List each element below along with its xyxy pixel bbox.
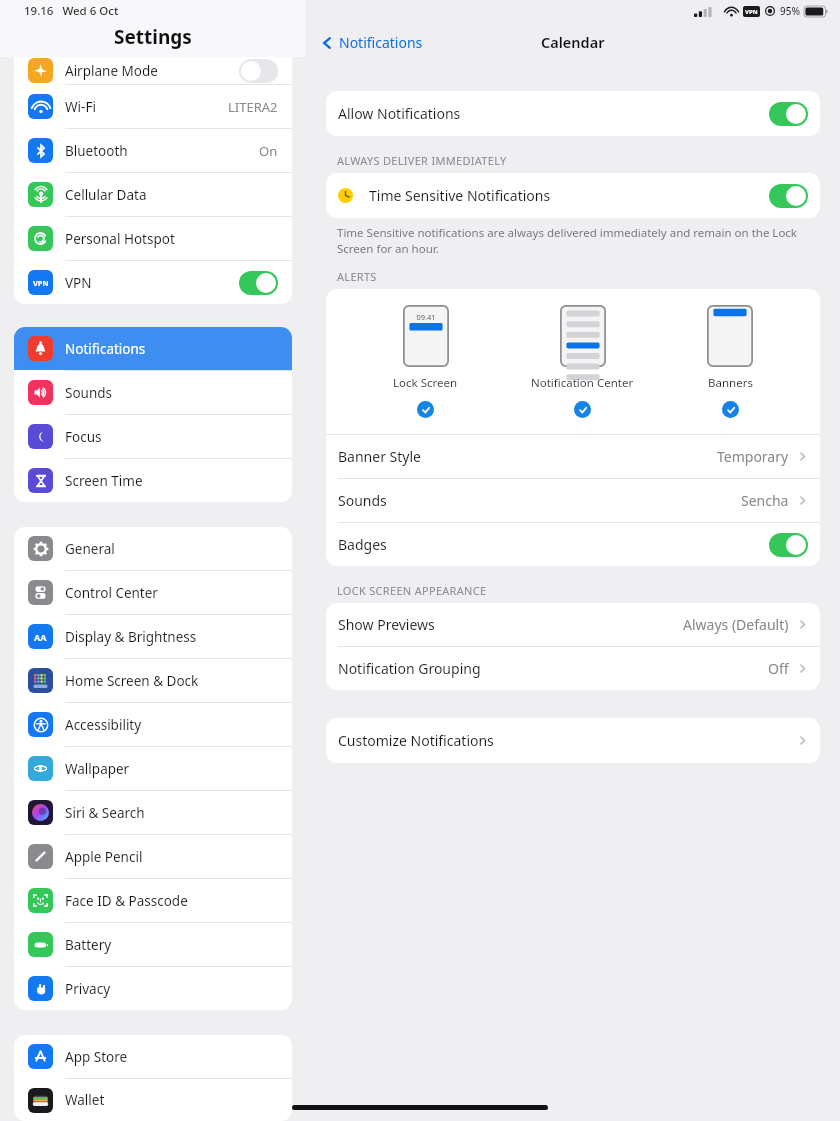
button[interactable]: On	[769, 533, 808, 557]
button[interactable]: Notification Grouping	[326, 647, 820, 690]
staticText: Off	[768, 659, 789, 678]
button[interactable]: On	[239, 271, 278, 295]
staticText: Notification Center	[531, 375, 634, 391]
staticText: Personal Hotspot	[65, 230, 175, 248]
button[interactable]: Face ID & Passcode	[14, 879, 292, 922]
staticText: VPN	[65, 274, 92, 292]
staticText: 19.16 Wed 6 Oct	[24, 3, 119, 19]
button[interactable]: General	[14, 527, 292, 570]
staticText: Wi-Fi	[65, 98, 96, 116]
button[interactable]: Wi-Fi	[14, 85, 292, 128]
staticText: Wallet	[65, 1091, 105, 1109]
staticText: LOCK SCREEN APPEARANCE	[337, 583, 487, 598]
button[interactable]: Lock Screen	[387, 305, 464, 418]
button[interactable]: Notifications	[316, 29, 427, 56]
button[interactable]: Wallpaper	[14, 747, 292, 790]
button[interactable]: Time Sensitive Notifications	[326, 173, 820, 218]
staticText: Focus	[65, 428, 102, 446]
button[interactable]: Sounds	[14, 371, 292, 414]
staticText: Face ID & Passcode	[65, 892, 188, 910]
staticText: Battery	[65, 936, 112, 954]
button[interactable]: Notification Center	[525, 305, 640, 418]
button[interactable]: VPN	[14, 261, 292, 304]
button[interactable]: App Store	[14, 1035, 292, 1078]
staticText: Time Sensitive Notifications	[369, 186, 551, 205]
staticText: Badges	[338, 535, 387, 554]
button[interactable]: Siri & Search	[14, 791, 292, 834]
button[interactable]: Wallet	[14, 1079, 292, 1121]
button[interactable]: Customize Notifications	[326, 718, 820, 763]
staticText: Wallpaper	[65, 760, 130, 778]
staticText: Temporary	[717, 447, 789, 466]
button[interactable]: Notifications	[14, 327, 292, 370]
staticText: App Store	[65, 1048, 128, 1066]
staticText: 95%	[780, 4, 800, 18]
staticText: On	[259, 142, 278, 160]
staticText: Notifications	[65, 340, 146, 358]
staticText: Cellular Data	[65, 186, 147, 204]
staticText: Home Screen & Dock	[65, 672, 199, 690]
button[interactable]: Sounds	[326, 479, 820, 522]
staticText: Screen Time	[65, 472, 143, 490]
button[interactable]: Allow Notifications	[326, 91, 820, 136]
staticText: Accessibility	[65, 716, 142, 734]
button[interactable]: Apple Pencil	[14, 835, 292, 878]
staticText: Settings	[114, 24, 192, 50]
staticText: ALWAYS DELIVER IMMEDIATELY	[337, 153, 507, 168]
staticText: Calendar	[541, 32, 605, 52]
staticText: Bluetooth	[65, 142, 128, 160]
staticText: Sounds	[65, 384, 113, 402]
staticText: General	[65, 540, 115, 558]
button[interactable]: On	[769, 102, 808, 126]
button[interactable]: Control Center	[14, 571, 292, 614]
staticText: AA	[34, 631, 47, 643]
button[interactable]: Airplane Mode	[14, 57, 292, 84]
staticText: Sencha	[741, 491, 789, 510]
staticText: Lock Screen	[393, 375, 458, 391]
staticText: Apple Pencil	[65, 848, 143, 866]
button[interactable]: Privacy	[14, 967, 292, 1010]
staticText: LITERA2	[228, 98, 278, 116]
staticText: Display & Brightness	[65, 628, 197, 646]
staticText: Notification Grouping	[338, 659, 481, 678]
button[interactable]: Focus	[14, 415, 292, 458]
staticText: VPN	[745, 8, 758, 16]
staticText: Siri & Search	[65, 804, 145, 822]
button[interactable]: AA	[14, 615, 292, 658]
button[interactable]: On	[769, 184, 808, 208]
staticText: Allow Notifications	[338, 104, 461, 123]
button[interactable]: Personal Hotspot	[14, 217, 292, 260]
staticText: VPN	[33, 278, 49, 288]
button[interactable]: Screen Time	[14, 459, 292, 502]
button[interactable]: Off	[239, 59, 278, 83]
button[interactable]: Banner Style	[326, 435, 820, 478]
button[interactable]: Bluetooth	[14, 129, 292, 172]
button[interactable]: Show Previews	[326, 603, 820, 646]
button[interactable]: Cellular Data	[14, 173, 292, 216]
staticText: Privacy	[65, 980, 111, 998]
staticText: Airplane Mode	[65, 62, 158, 80]
button[interactable]: Badges	[326, 523, 820, 566]
staticText: Time Sensitive notifications are always …	[337, 225, 806, 256]
staticText: Banner Style	[338, 447, 421, 466]
button[interactable]: Home Screen & Dock	[14, 659, 292, 702]
staticText: Sounds	[338, 491, 387, 510]
button[interactable]: Accessibility	[14, 703, 292, 746]
staticText: Always (Default)	[683, 615, 789, 634]
staticText: Control Center	[65, 584, 158, 602]
staticText: ALERTS	[337, 269, 377, 284]
staticText: Customize Notifications	[338, 731, 494, 750]
staticText: 09.41	[416, 312, 436, 322]
staticText: Notifications	[339, 33, 423, 52]
staticText: Show Previews	[338, 615, 435, 634]
staticText: Banners	[708, 375, 753, 391]
button[interactable]: Banners	[701, 305, 759, 418]
button[interactable]: Battery	[14, 923, 292, 966]
